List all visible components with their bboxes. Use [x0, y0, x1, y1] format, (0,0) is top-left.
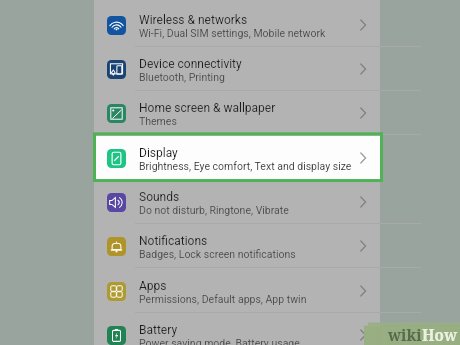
staticText: Display	[139, 146, 178, 160]
staticText: Themes	[139, 115, 177, 127]
other: Display	[353, 148, 373, 168]
other: Battery	[353, 325, 373, 345]
other: Device connectivity	[353, 59, 373, 79]
button[interactable]: Apps	[94, 269, 380, 313]
staticText: Apps	[139, 279, 167, 293]
staticText: Battery	[139, 323, 178, 337]
staticText: Bluetooth, Printing	[139, 71, 225, 83]
staticText: Wireless & networks	[139, 13, 248, 27]
staticText: Sounds	[139, 190, 180, 204]
staticText: Power saving mode, Battery usage	[139, 337, 300, 345]
staticText: Badges, Lock screen notifications	[139, 248, 296, 260]
staticText: Do not disturb, Ringtone, Vibrate	[139, 204, 289, 216]
staticText: How	[422, 325, 458, 345]
button[interactable]: Wireless & networks	[94, 3, 380, 47]
staticText: Device connectivity	[139, 57, 242, 71]
button[interactable]: Battery	[94, 313, 380, 345]
button[interactable]: Device connectivity	[94, 47, 380, 91]
staticText: Notifications	[139, 234, 208, 248]
staticText: wiki	[388, 325, 422, 345]
button[interactable]: Notifications	[94, 224, 380, 268]
button[interactable]: Sounds	[94, 180, 380, 224]
other: Notifications	[353, 236, 373, 256]
button[interactable]: Home screen & wallpaper	[94, 91, 380, 135]
other: Home screen & wallpaper	[353, 103, 373, 123]
button[interactable]: Display	[94, 136, 380, 180]
other: Sounds	[353, 192, 373, 212]
other: Apps	[353, 281, 373, 301]
staticText: Permissions, Default apps, App twin	[139, 293, 307, 305]
other: Wireless & networks	[353, 15, 373, 35]
staticText: Wi-Fi, Dual SIM settings, Mobile network	[139, 27, 326, 39]
staticText: Brightness, Eye comfort, Text and displa…	[139, 160, 352, 172]
staticText: Home screen & wallpaper	[139, 101, 276, 115]
